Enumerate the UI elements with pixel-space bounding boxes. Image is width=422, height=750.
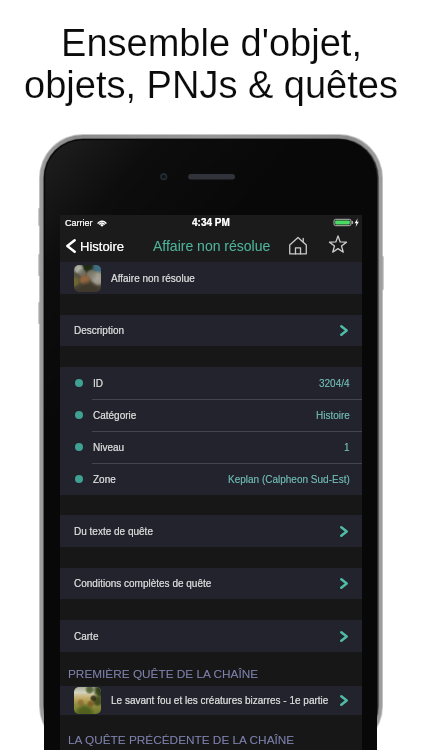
- staticText: Du texte de quête: [74, 526, 153, 537]
- button[interactable]: Carte: [60, 620, 362, 652]
- staticText: Catégorie: [93, 410, 137, 421]
- button[interactable]: Favorite: [323, 230, 351, 262]
- staticText: Keplan (Calpheon Sud-Est): [228, 474, 350, 485]
- staticText: Histoire: [316, 410, 350, 421]
- button[interactable]: Zone: [60, 463, 362, 495]
- staticText: Niveau: [93, 442, 125, 453]
- staticText: Carrier: [65, 218, 93, 228]
- staticText: Zone: [93, 474, 116, 485]
- staticText: Affaire non résolue: [153, 238, 271, 254]
- staticText: Carte: [74, 631, 99, 642]
- button[interactable]: Niveau: [60, 431, 362, 463]
- staticText: ID: [93, 378, 103, 389]
- button[interactable]: Home: [284, 230, 312, 262]
- staticText: Histoire: [80, 239, 125, 254]
- button[interactable]: Affaire non résolue: [60, 262, 362, 294]
- staticText: LA QUÊTE PRÉCÉDENTE DE LA CHAÎNE: [68, 733, 295, 746]
- button[interactable]: Description: [60, 315, 362, 346]
- staticText: Ensemble d'objet,: [61, 22, 362, 64]
- staticText: 3204/4: [319, 378, 350, 389]
- button[interactable]: Le savant fou et les créatures bizarres …: [60, 686, 362, 715]
- staticText: objets, PNJs & quêtes: [24, 64, 398, 106]
- staticText: Description: [74, 325, 125, 336]
- staticText: PREMIÈRE QUÊTE DE LA CHAÎNE: [68, 667, 259, 680]
- button[interactable]: Du texte de quête: [60, 515, 362, 547]
- staticText: Affaire non résolue: [111, 273, 195, 284]
- staticText: 4:34 PM: [192, 217, 230, 228]
- staticText: Le savant fou et les créatures bizarres …: [111, 695, 329, 706]
- staticText: 1: [344, 442, 350, 453]
- button[interactable]: Conditions complètes de quête: [60, 568, 362, 599]
- button[interactable]: ID: [60, 367, 362, 399]
- button[interactable]: Histoire: [66, 230, 131, 262]
- staticText: Conditions complètes de quête: [74, 578, 212, 589]
- button[interactable]: Catégorie: [60, 399, 362, 431]
